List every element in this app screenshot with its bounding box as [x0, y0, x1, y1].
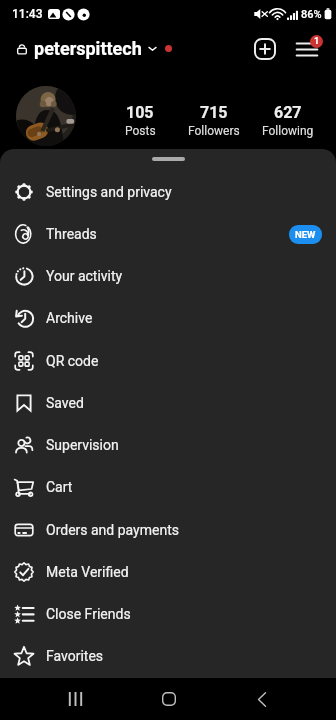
button[interactable]: New post	[251, 35, 279, 63]
staticText: Saved	[46, 395, 84, 411]
staticText: Archive	[46, 310, 93, 326]
staticText: peterspittech	[34, 38, 142, 59]
staticText: Meta Verified	[46, 564, 129, 580]
staticText: NEW	[295, 229, 316, 240]
staticText: 715	[200, 103, 228, 122]
button[interactable]: Profile picture	[16, 86, 76, 146]
staticText: 1	[314, 36, 320, 47]
staticText: 11:43	[12, 7, 43, 21]
button[interactable]: Meta Verified	[0, 551, 336, 593]
button[interactable]: Archive	[0, 297, 336, 339]
button[interactable]: Menu	[293, 35, 321, 63]
button[interactable]: Threads	[0, 213, 336, 255]
staticText: QR code	[46, 353, 99, 369]
button[interactable]: Your activity	[0, 255, 336, 297]
staticText: 627	[274, 103, 302, 122]
button[interactable]: Supervision	[0, 424, 336, 466]
button[interactable]: 627	[257, 103, 319, 138]
button[interactable]: Favorites	[0, 635, 336, 677]
button[interactable]: QR code	[0, 340, 336, 382]
staticText: Supervision	[46, 437, 119, 453]
staticText: Followers	[188, 124, 240, 138]
button[interactable]: Orders and payments	[0, 509, 336, 551]
staticText: Favorites	[46, 648, 104, 664]
staticText: Settings and privacy	[46, 184, 172, 200]
button[interactable]: Cart	[0, 466, 336, 508]
button[interactable]: Close Friends	[0, 593, 336, 635]
button[interactable]: Recents	[53, 678, 97, 720]
button[interactable]: Home	[147, 678, 191, 720]
staticText: Following	[262, 124, 314, 138]
button[interactable]: Saved	[0, 382, 336, 424]
staticText: 86%	[301, 8, 322, 21]
button[interactable]: peterspittech	[16, 38, 158, 59]
staticText: 105	[126, 103, 154, 122]
button[interactable]: Back	[240, 678, 284, 720]
button[interactable]: Settings and privacy	[0, 171, 336, 213]
staticText: Cart	[46, 479, 73, 495]
staticText: Threads	[46, 226, 97, 242]
staticText: Close Friends	[46, 606, 131, 622]
staticText: Your activity	[46, 268, 123, 284]
button[interactable]: 715	[184, 103, 244, 138]
button[interactable]: 105	[110, 103, 170, 138]
staticText: Posts	[125, 124, 156, 138]
staticText: Orders and payments	[46, 522, 179, 538]
